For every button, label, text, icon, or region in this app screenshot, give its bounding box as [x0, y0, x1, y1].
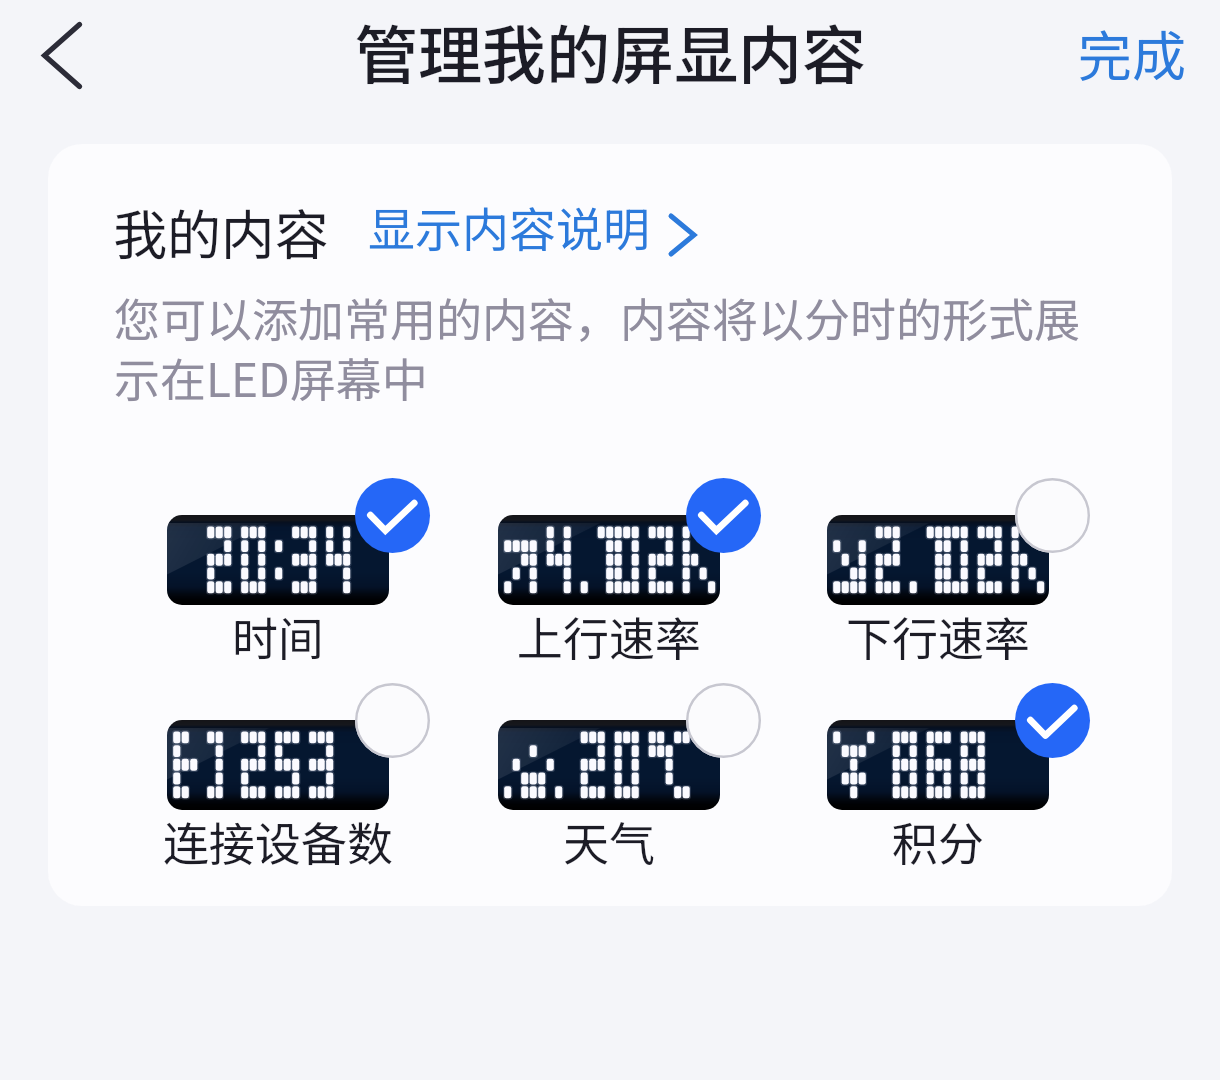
staticText: 天气 — [462, 808, 756, 875]
staticText: 上行速率 — [462, 603, 756, 670]
button[interactable]: 显示内容说明 — [368, 192, 702, 260]
staticText: 积分 — [791, 808, 1085, 875]
staticText: 我的内容 — [113, 192, 329, 270]
staticText: 连接设备数 — [131, 808, 425, 875]
button[interactable]: 积分 — [791, 684, 1085, 859]
staticText: 显示内容说明 — [368, 192, 650, 260]
staticText: 管理我的屏显内容 — [0, 5, 1220, 98]
staticText: 下行速率 — [791, 603, 1085, 670]
button[interactable]: 连接设备数 — [131, 684, 425, 859]
button[interactable]: 天气 — [462, 684, 756, 859]
staticText: 时间 — [131, 603, 425, 670]
button[interactable]: 上行速率 — [462, 479, 756, 654]
staticText: 您可以添加常用的内容，内容将以分时的形式展示在LED屏幕中 — [114, 284, 1089, 410]
staticText: 完成 — [1078, 13, 1186, 91]
button[interactable]: 时间 — [131, 479, 425, 654]
button[interactable]: 完成 — [1078, 13, 1186, 91]
button[interactable]: Back — [6, 0, 116, 110]
button[interactable]: 下行速率 — [791, 479, 1085, 654]
